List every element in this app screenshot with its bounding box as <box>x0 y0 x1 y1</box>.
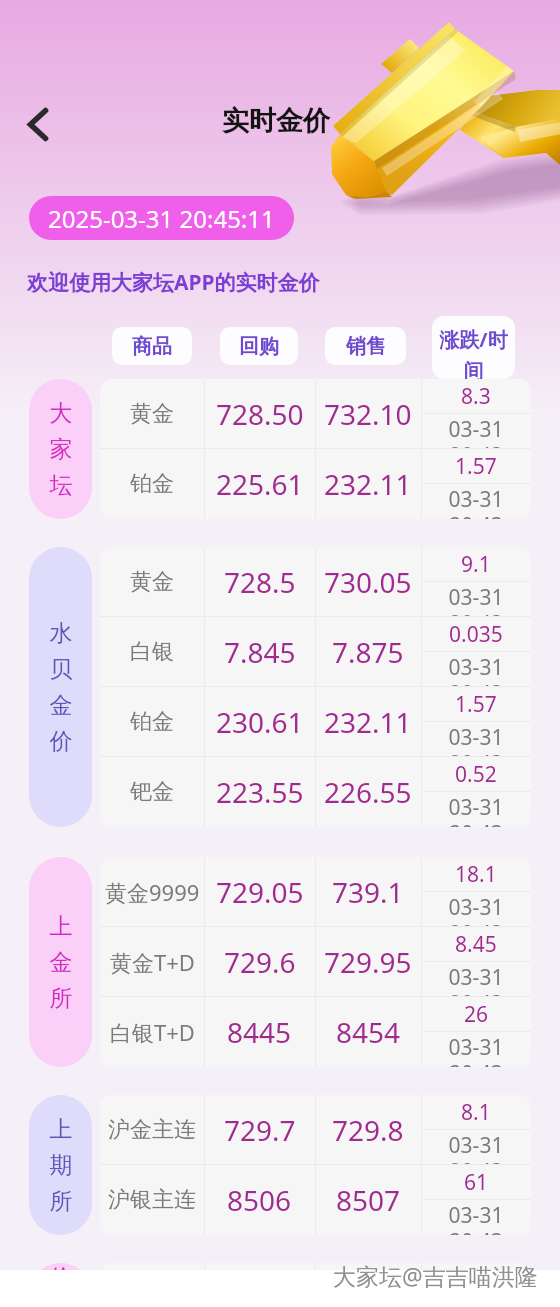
button[interactable]: Back <box>12 98 64 150</box>
button[interactable]: 回购 <box>220 327 298 365</box>
staticText: 729.8 <box>332 1111 404 1149</box>
button[interactable]: 大家坛 <box>29 379 92 519</box>
staticText: 伦敦金 <box>44 1263 78 1270</box>
staticText: 黄金9999 <box>105 877 200 907</box>
button[interactable]: 销售 <box>325 327 406 365</box>
staticText: 12 <box>464 1266 489 1270</box>
staticText: 03-31 20:43 <box>421 1033 531 1067</box>
button[interactable]: 铂金 <box>100 687 531 757</box>
staticText: 03-31 20:43 <box>421 583 531 617</box>
staticText: 1.57 <box>455 452 497 481</box>
button[interactable]: 商品 <box>112 327 192 365</box>
staticText: 729.95 <box>324 943 412 981</box>
staticText: 销售 <box>346 334 386 359</box>
button[interactable]: 黄金9999 <box>100 857 531 927</box>
staticText: 728.50 <box>216 395 304 433</box>
staticText: 18.1 <box>455 860 497 889</box>
staticText: 729.7 <box>224 1111 296 1149</box>
staticText: 铂金 <box>130 708 174 736</box>
button[interactable]: 伦敦金 <box>100 1263 531 1270</box>
staticText: 8506 <box>227 1181 292 1219</box>
button[interactable]: 白银 <box>100 617 531 687</box>
staticText: 03-31 20:43 <box>421 963 531 997</box>
button[interactable]: 白银T+D <box>100 997 531 1067</box>
button[interactable]: 黄金 <box>100 547 531 617</box>
button[interactable]: 上金所 <box>29 857 92 1067</box>
button[interactable]: 铂金 <box>100 449 531 519</box>
staticText: 26 <box>464 1000 489 1029</box>
staticText: 上期所 <box>44 1115 78 1216</box>
staticText: 223.55 <box>216 773 304 811</box>
staticText: 03-31 20:43 <box>421 1131 531 1165</box>
staticText: 白银T+D <box>110 1017 195 1047</box>
staticText: 黄金T+D <box>110 947 195 977</box>
staticText: 涨跌/时间 <box>432 326 515 379</box>
staticText: 黄金 <box>130 568 174 596</box>
staticText: 232.11 <box>324 703 412 741</box>
staticText: 732.10 <box>324 395 412 433</box>
staticText: 03-31 20:43 <box>421 415 531 449</box>
staticText: 回购 <box>239 334 279 359</box>
staticText: 铂金 <box>130 470 174 498</box>
staticText: 730.05 <box>324 563 412 601</box>
staticText: 沪金主连 <box>108 1116 196 1144</box>
staticText: 8507 <box>336 1181 401 1219</box>
staticText: 226.55 <box>324 773 412 811</box>
staticText: 实时金价 <box>222 104 330 138</box>
staticText: 729.05 <box>216 873 304 911</box>
staticText: 8454 <box>336 1013 401 1051</box>
button[interactable]: 黄金T+D <box>100 927 531 997</box>
staticText: 8.3 <box>461 382 491 411</box>
staticText: 232.11 <box>324 465 412 503</box>
staticText: 03-31 20:43 <box>421 893 531 927</box>
staticText: 钯金 <box>130 778 174 806</box>
staticText: 03-31 20:43 <box>421 485 531 519</box>
button[interactable]: 沪金主连 <box>100 1095 531 1165</box>
staticText: 03-31 20:43 <box>421 793 531 827</box>
button[interactable]: 伦敦金 <box>29 1263 92 1270</box>
staticText: 729.6 <box>224 943 296 981</box>
button[interactable]: 水贝金价 <box>29 547 92 827</box>
staticText: 大家坛 <box>44 399 78 500</box>
staticText: 7.875 <box>332 633 404 671</box>
staticText: 白银 <box>130 638 174 666</box>
staticText: 黄金 <box>130 400 174 428</box>
staticText: 沪银主连 <box>108 1186 196 1214</box>
staticText: 9.1 <box>461 550 491 579</box>
staticText: 03-31 20:43 <box>421 723 531 757</box>
button[interactable]: 黄金 <box>100 379 531 449</box>
staticText: 0.035 <box>449 620 503 649</box>
staticText: 03-31 20:43 <box>421 1201 531 1235</box>
button[interactable]: 上期所 <box>29 1095 92 1235</box>
staticText: 商品 <box>132 334 172 359</box>
staticText: 欢迎使用大家坛APP的实时金价 <box>27 268 320 297</box>
staticText: 7.845 <box>224 633 296 671</box>
staticText: 上金所 <box>44 912 78 1013</box>
staticText: 8.45 <box>455 930 497 959</box>
staticText: 03-31 20:43 <box>421 653 531 687</box>
staticText: 水贝金价 <box>44 619 78 756</box>
button[interactable]: 2025-03-31 20:45:11 <box>29 196 294 240</box>
staticText: 61 <box>464 1168 489 1197</box>
staticText: 大家坛@吉吉喵洪隆 <box>333 1260 538 1291</box>
button[interactable]: 涨跌/时间 <box>432 316 515 379</box>
staticText: 0.52 <box>455 760 497 789</box>
button[interactable]: 钯金 <box>100 757 531 827</box>
staticText: 2025-03-31 20:45:11 <box>48 202 275 235</box>
staticText: 1.57 <box>455 690 497 719</box>
staticText: 739.1 <box>332 873 404 911</box>
staticText: 8445 <box>227 1013 292 1051</box>
button[interactable]: 沪银主连 <box>100 1165 531 1235</box>
staticText: 225.61 <box>216 465 304 503</box>
staticText: 230.61 <box>216 703 304 741</box>
staticText: 728.5 <box>224 563 296 601</box>
staticText: 8.1 <box>461 1098 491 1127</box>
